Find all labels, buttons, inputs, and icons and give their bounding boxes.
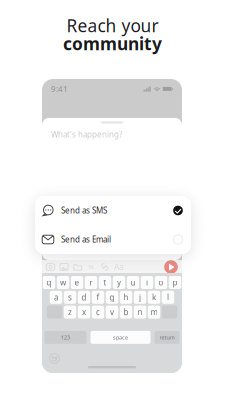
- staticText: What's happening?: [51, 129, 122, 140]
- staticText: m: [150, 307, 157, 317]
- staticText: Aa: [114, 262, 123, 272]
- staticText: community: [63, 32, 162, 55]
- staticText: 123: [61, 334, 70, 341]
- staticText: 9:41: [51, 84, 68, 94]
- staticText: n: [137, 307, 142, 317]
- staticText: f: [96, 292, 99, 303]
- button[interactable]: Emoji keyboard: [49, 353, 60, 364]
- staticText: d: [81, 292, 86, 303]
- staticText: Send as Email: [61, 234, 111, 245]
- staticText: g: [109, 292, 114, 303]
- staticText: z: [68, 307, 72, 317]
- staticText: y: [117, 277, 121, 288]
- staticText: i: [146, 277, 148, 288]
- staticText: e: [74, 277, 79, 288]
- button[interactable]: Send: [164, 260, 178, 274]
- staticText: c: [96, 307, 100, 317]
- staticText: s: [68, 292, 72, 303]
- staticText: o: [158, 277, 163, 288]
- button[interactable]: Send as Email: [35, 225, 191, 254]
- staticText: r: [89, 277, 92, 288]
- staticText: t: [103, 277, 106, 288]
- staticText: p: [172, 277, 177, 288]
- button[interactable]: Send as SMS: [35, 196, 191, 225]
- staticText: j: [139, 292, 141, 303]
- staticText: space: [113, 334, 128, 341]
- staticText: w: [60, 277, 66, 288]
- staticText: return: [159, 334, 174, 341]
- staticText: q: [46, 277, 51, 288]
- staticText: Send as SMS: [61, 205, 107, 216]
- staticText: h: [123, 292, 128, 303]
- staticText: v: [110, 307, 114, 317]
- staticText: l: [167, 292, 169, 303]
- staticText: x: [82, 307, 86, 317]
- staticText: b: [123, 307, 128, 317]
- staticText: k: [152, 292, 156, 303]
- staticText: Reach your: [66, 14, 158, 37]
- staticText: a: [54, 292, 58, 303]
- staticText: u: [130, 277, 135, 288]
